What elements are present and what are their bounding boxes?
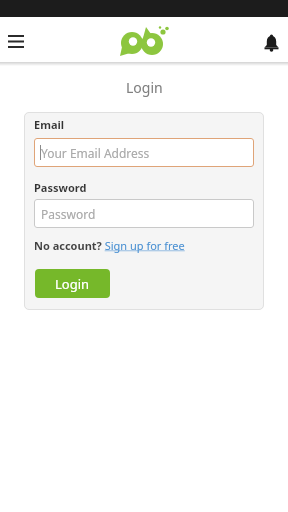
staticText: Your Email Address: [41, 145, 150, 161]
staticText: Password: [34, 180, 87, 195]
staticText: Email: [34, 117, 65, 132]
staticText: Login: [55, 275, 90, 293]
staticText: Password: [41, 206, 96, 222]
staticText: Login: [126, 78, 163, 97]
staticText: No account? Sign up for free: [34, 238, 185, 253]
